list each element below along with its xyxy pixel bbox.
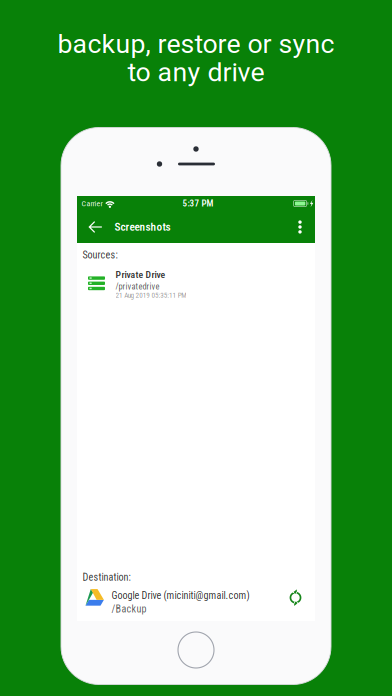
staticText: Screenshots [114, 220, 170, 234]
staticText: to any drive [127, 56, 264, 88]
staticText: /Backup [111, 603, 146, 615]
staticText: backup, restore or sync [57, 28, 334, 59]
staticText: Private Drive [115, 269, 165, 280]
staticText: Destination: [82, 571, 130, 583]
button[interactable]: Google Drive (miciniti@gmail.com) [77, 588, 315, 615]
staticText: Sources: [82, 249, 117, 261]
staticText: 5:37 PM [182, 198, 213, 209]
staticText: Carrier [81, 199, 102, 208]
button[interactable]: More options [285, 211, 315, 243]
staticText: 21 Aug 2019 05:35:11 PM [115, 291, 186, 299]
staticText: Google Drive (miciniti@gmail.com) [111, 590, 249, 602]
button[interactable]: Back [80, 211, 110, 243]
button[interactable]: Private Drive [77, 269, 315, 299]
staticText: /privatedrive [115, 282, 159, 292]
